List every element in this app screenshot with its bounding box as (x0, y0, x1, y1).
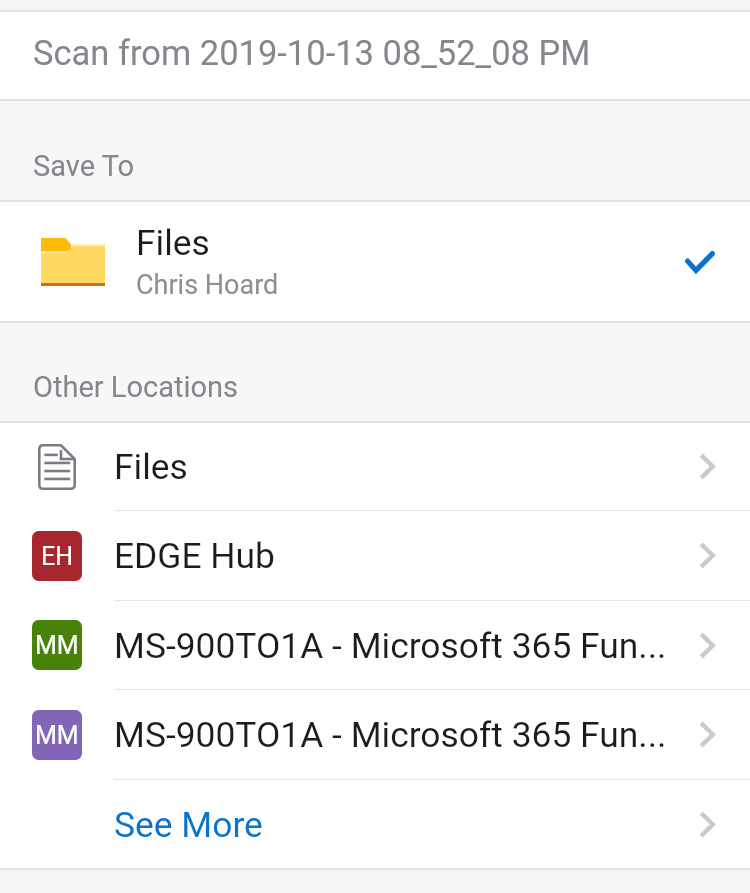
button[interactable]: MM (0, 601, 750, 689)
staticText: EDGE Hub (114, 535, 688, 576)
staticText: MM (35, 721, 79, 750)
other: Open MS-900TO1A - Microsoft 365 Fun... (699, 632, 715, 659)
staticText: See More (114, 804, 688, 845)
staticText: EH (41, 542, 74, 571)
other: Open MS-900TO1A - Microsoft 365 Fun... (699, 721, 715, 748)
button[interactable]: Files (0, 202, 750, 321)
other: Open EDGE Hub (699, 542, 715, 569)
staticText: Other Locations (33, 370, 238, 404)
staticText: Files (114, 446, 688, 487)
button[interactable]: Files (0, 423, 750, 510)
staticText: MS-900TO1A - Microsoft 365 Fun... (114, 714, 688, 755)
staticText: MS-900TO1A - Microsoft 365 Fun... (114, 625, 688, 666)
staticText: Scan from 2019-10-13 08_52_08 PM (33, 33, 591, 73)
staticText: MM (35, 631, 79, 660)
button[interactable]: See More (0, 780, 750, 868)
staticText: Chris Hoard (136, 269, 279, 301)
other: Selected (685, 251, 715, 273)
button[interactable]: MM (0, 690, 750, 779)
staticText: Files (136, 222, 210, 263)
other: Open See More (699, 811, 715, 838)
button[interactable]: EH (0, 511, 750, 600)
other: Open Files (699, 453, 715, 480)
staticText: Save To (33, 149, 135, 183)
